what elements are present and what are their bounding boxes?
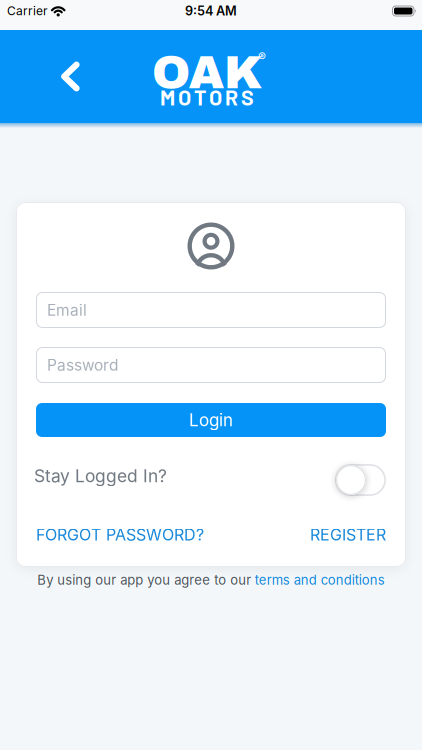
staticText: O xyxy=(178,84,191,110)
staticText: Login xyxy=(189,410,233,430)
button[interactable]: Password xyxy=(36,347,386,383)
button[interactable]: REGISTER xyxy=(310,525,386,544)
button[interactable]: terms and conditions xyxy=(255,572,385,588)
staticText: R xyxy=(225,84,238,110)
staticText: By using our app you agree to our xyxy=(37,572,251,588)
staticText: T xyxy=(194,84,206,110)
staticText: Password xyxy=(47,356,118,374)
button[interactable]: Stay Logged In xyxy=(335,464,386,496)
button[interactable]: Back xyxy=(0,43,102,109)
staticText: terms and conditions xyxy=(255,572,385,588)
staticText: O xyxy=(209,84,222,110)
button[interactable]: FORGOT PASSWORD? xyxy=(36,525,204,544)
staticText: OAK xyxy=(152,48,262,98)
staticText: 9:54 AM xyxy=(185,3,237,19)
staticText: ® xyxy=(258,50,266,64)
staticText: REGISTER xyxy=(310,525,386,544)
staticText: S xyxy=(241,84,254,110)
staticText: Email xyxy=(47,301,87,319)
staticText: FORGOT PASSWORD? xyxy=(36,525,204,544)
staticText: Stay Logged In? xyxy=(34,465,167,486)
button[interactable]: Email xyxy=(36,292,386,328)
button[interactable]: Login xyxy=(36,403,386,437)
staticText: Carrier xyxy=(7,4,48,18)
staticText: M xyxy=(160,84,175,110)
